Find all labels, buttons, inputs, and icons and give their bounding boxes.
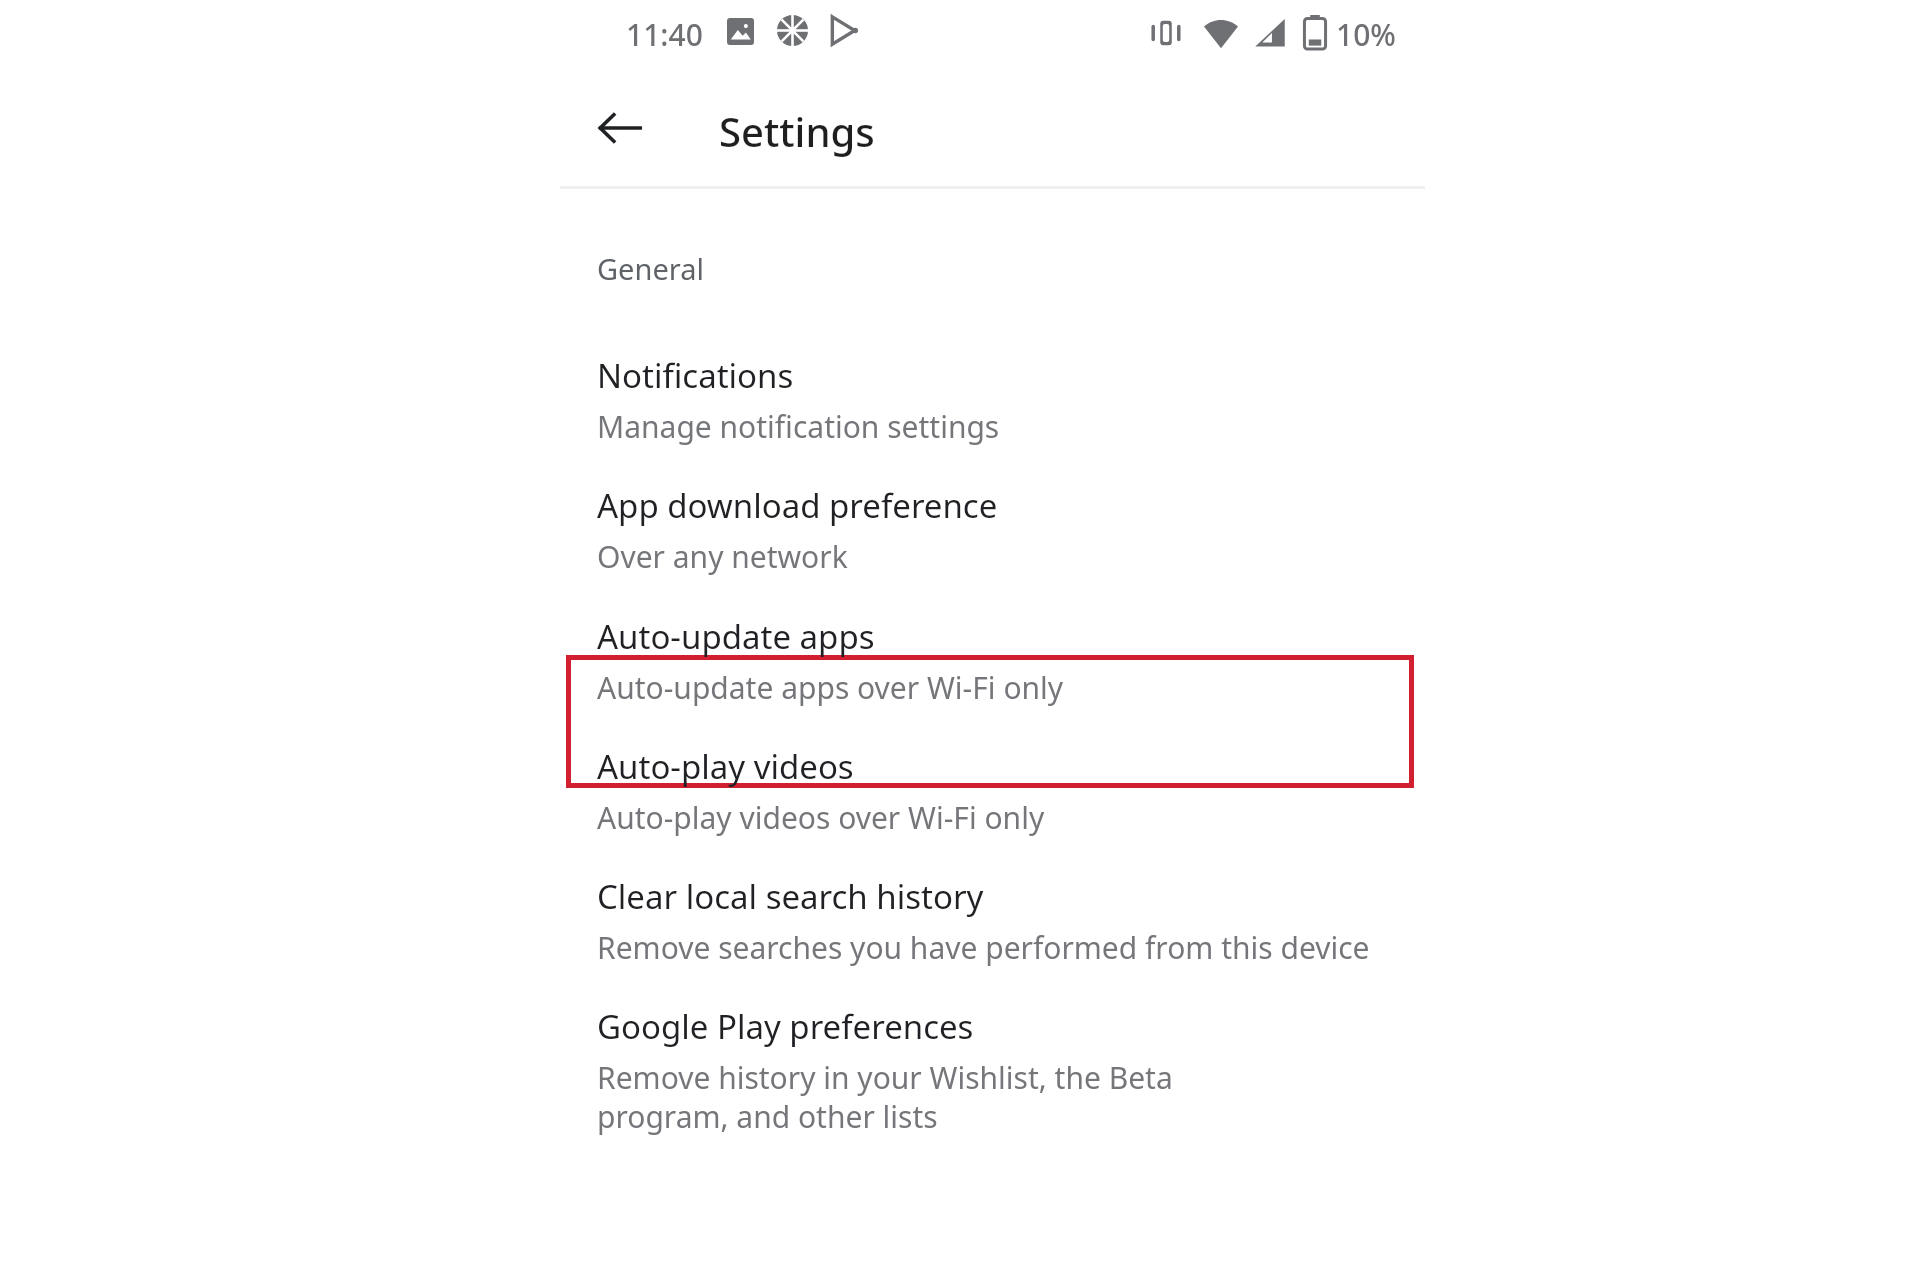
- staticText: Remove history in your Wishlist, the Bet…: [597, 1057, 1237, 1136]
- button[interactable]: Notifications: [597, 353, 1427, 447]
- button[interactable]: Google Play preferences: [597, 1004, 1237, 1136]
- staticText: 10%: [1336, 14, 1396, 55]
- staticText: Remove searches you have performed from …: [597, 927, 1370, 968]
- staticText: Google Play preferences: [597, 1004, 974, 1049]
- button[interactable]: Auto-update apps: [597, 614, 1427, 708]
- staticText: Auto-update apps: [597, 614, 875, 659]
- staticText: Auto-play videos: [597, 744, 854, 789]
- staticText: Auto-play videos over Wi-Fi only: [597, 797, 1045, 838]
- staticText: Clear local search history: [597, 874, 984, 919]
- staticText: Auto-update apps over Wi-Fi only: [597, 667, 1064, 708]
- staticText: Manage notification settings: [597, 406, 1000, 447]
- staticText: App download preference: [597, 483, 998, 528]
- staticText: 11:40: [626, 14, 703, 55]
- button[interactable]: App download preference: [597, 483, 1427, 577]
- staticText: Settings: [719, 104, 875, 158]
- button[interactable]: Back: [586, 94, 654, 162]
- staticText: General: [597, 249, 704, 288]
- button[interactable]: Auto-play videos: [597, 744, 1427, 838]
- staticText: Over any network: [597, 536, 848, 577]
- button[interactable]: Clear local search history: [597, 874, 1427, 968]
- staticText: Notifications: [597, 353, 794, 398]
